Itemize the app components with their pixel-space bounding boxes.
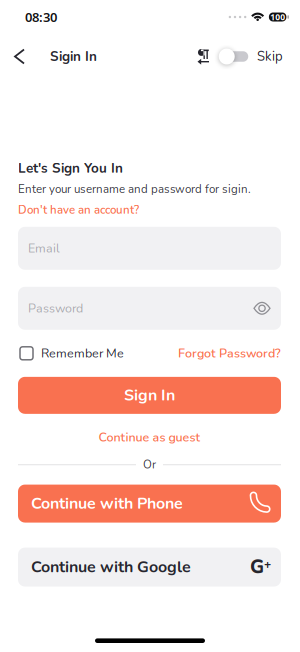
staticText: Email (28, 240, 60, 257)
button[interactable]: Continue as guest (18, 429, 281, 446)
staticText: Continue with Google (31, 556, 191, 578)
staticText: + (264, 556, 271, 572)
button[interactable]: Remember Me (20, 345, 124, 362)
button[interactable]: Skip (249, 48, 300, 65)
button[interactable]: Show password (254, 303, 281, 313)
staticText: 08:30 (25, 8, 57, 26)
button[interactable]: Text direction (197, 49, 209, 63)
staticText: Let's Sign You In (18, 159, 123, 177)
staticText: G (250, 554, 264, 580)
staticText: Remember Me (41, 345, 124, 362)
staticText: 100 (270, 11, 285, 23)
button[interactable]: Don't have an account? (18, 197, 139, 218)
staticText: Sign In (124, 384, 175, 406)
staticText: Or (143, 457, 156, 473)
staticText: Continue with Phone (31, 493, 183, 514)
button[interactable]: Toggle (209, 48, 249, 65)
staticText: Continue as guest (98, 429, 200, 446)
button[interactable]: Sign In (18, 377, 281, 414)
button[interactable]: Forgot Password? (178, 345, 281, 362)
staticText: Forgot Password? (178, 345, 281, 362)
button[interactable]: Back (0, 49, 24, 63)
staticText: Password (28, 300, 83, 317)
staticText: Enter your username and password for sig… (18, 181, 251, 197)
button[interactable]: Continue with Google (18, 548, 281, 587)
staticText: Sigin In (50, 47, 97, 66)
staticText: Don't have an account? (18, 202, 139, 218)
staticText: Skip (257, 48, 283, 65)
button[interactable]: Continue with Phone (18, 485, 281, 523)
